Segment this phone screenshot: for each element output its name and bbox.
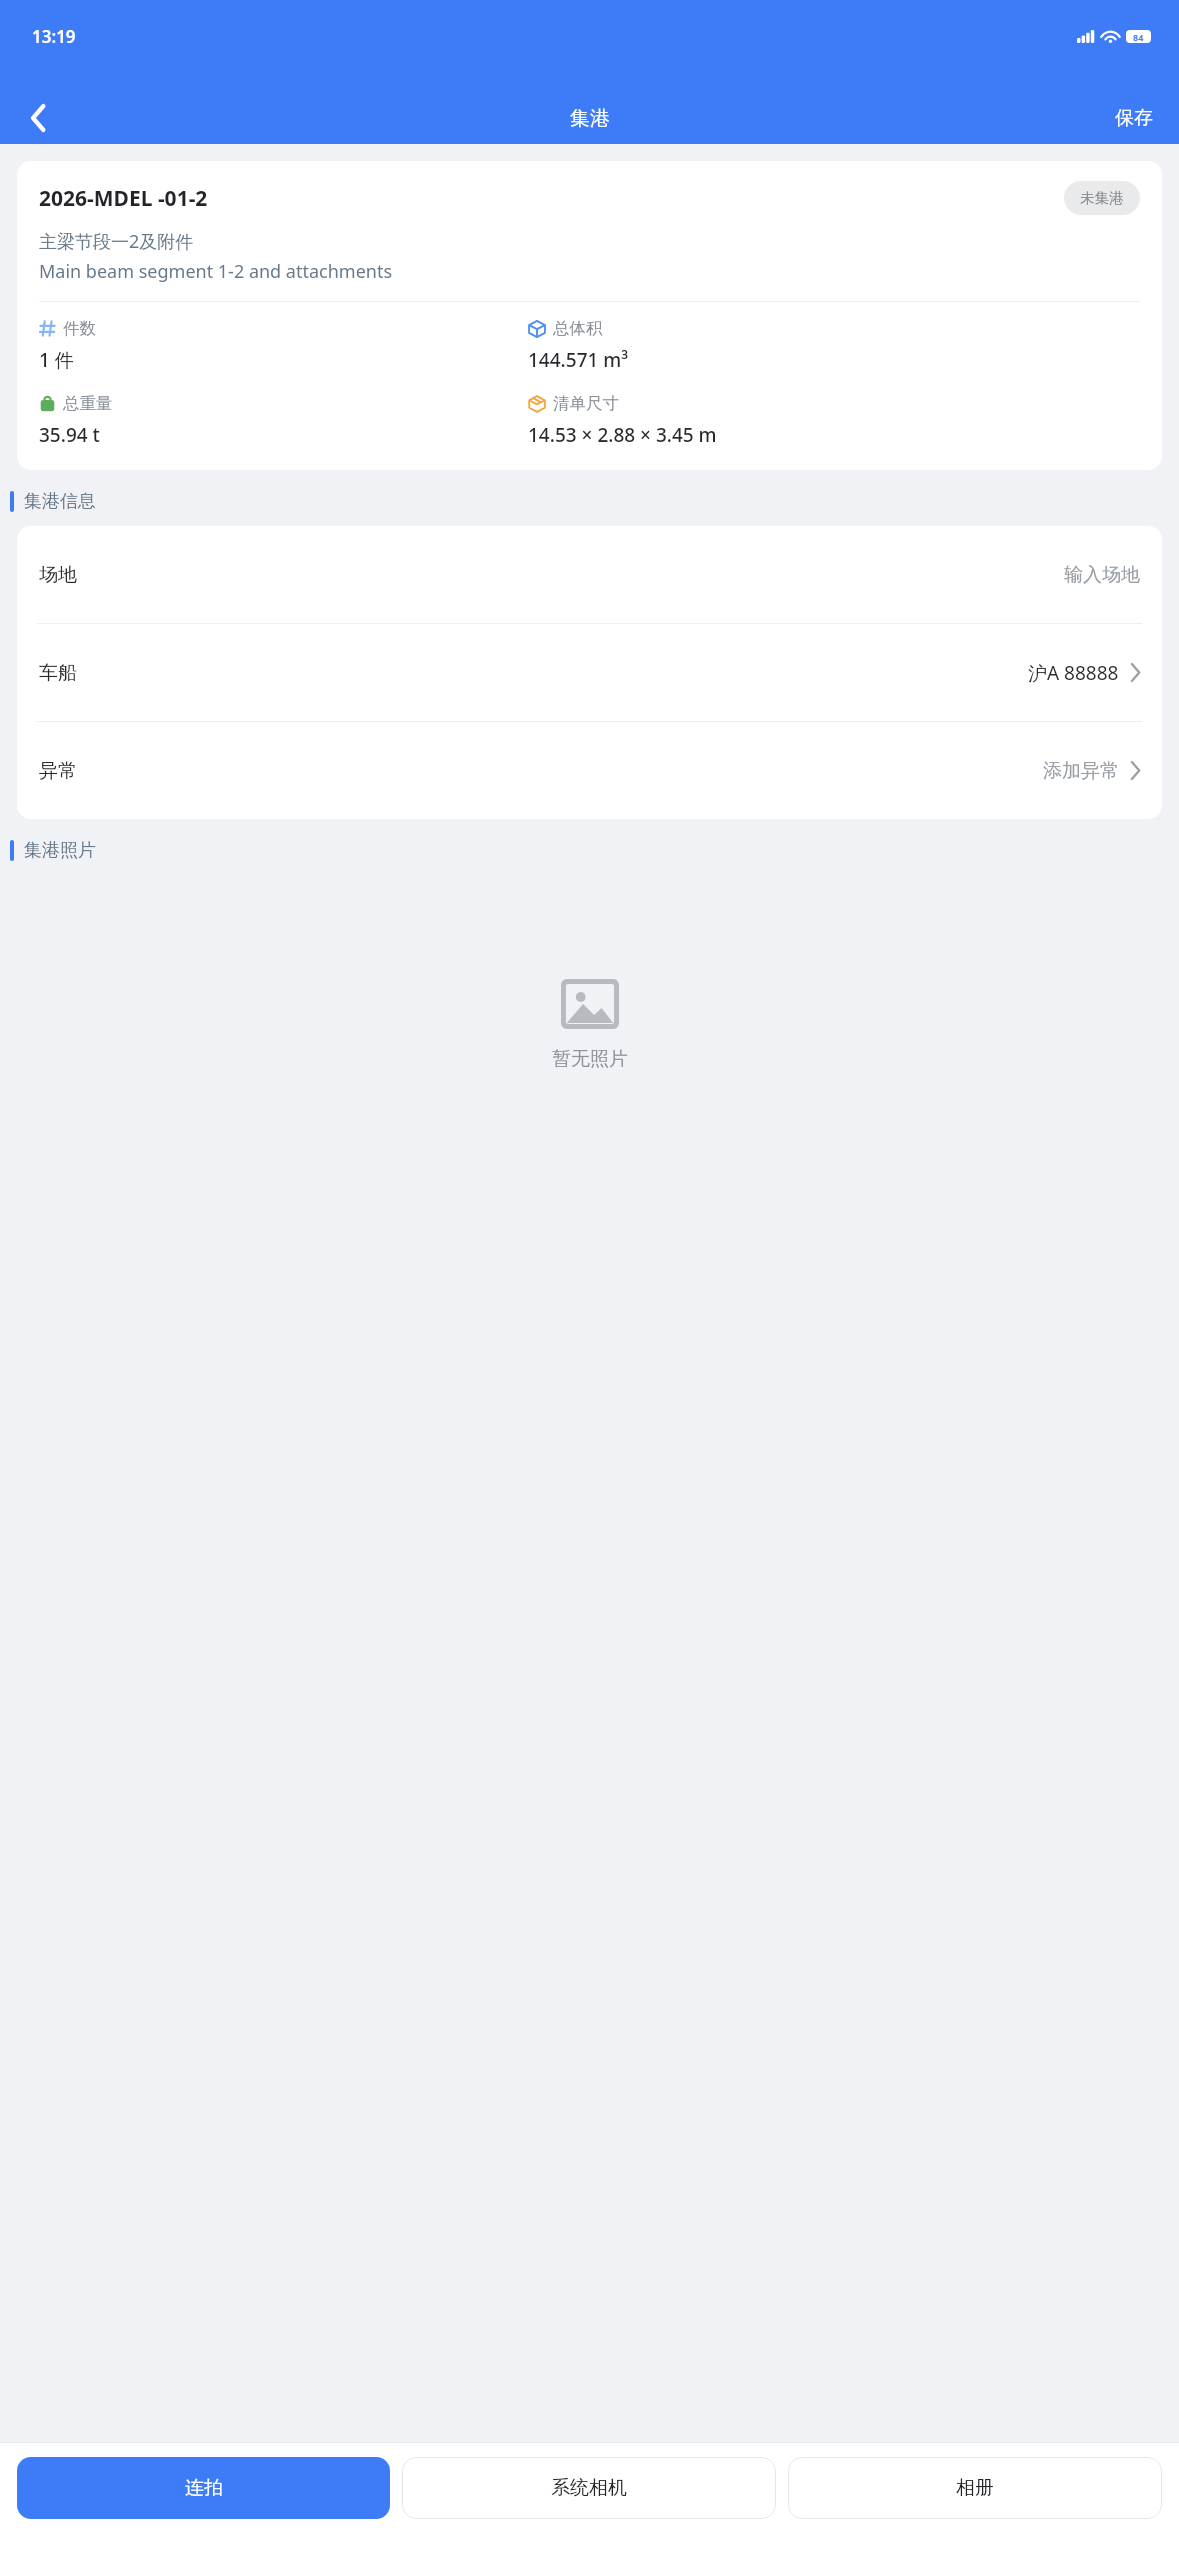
staticText: 13:19: [32, 25, 76, 48]
staticText: 沪A 88888: [1028, 660, 1119, 686]
staticText: 车船: [39, 661, 1028, 685]
staticText: 集港信息: [24, 490, 96, 513]
staticText: 暂无照片: [552, 1047, 628, 1071]
staticText: Main beam segment 1-2 and attachments: [39, 259, 393, 284]
staticText: 保存: [1115, 106, 1153, 130]
staticText: 2026-MDEL -01-2: [39, 184, 1064, 213]
button[interactable]: 2026-MDEL -01-2: [17, 161, 1162, 470]
button[interactable]: 系统相机: [402, 2457, 776, 2519]
staticText: 清单尺寸: [553, 393, 619, 414]
staticText: 异常: [39, 759, 1043, 783]
staticText: 件数: [63, 318, 96, 339]
staticText: 总重量: [63, 393, 113, 414]
staticText: 84: [1133, 31, 1144, 43]
button[interactable]: 场地: [17, 526, 1162, 623]
staticText: 35.94 t: [39, 422, 100, 448]
staticText: 集港: [570, 106, 610, 131]
button[interactable]: 异常: [17, 722, 1162, 819]
staticText: 未集港: [1080, 189, 1124, 207]
staticText: 场地: [39, 563, 1064, 587]
staticText: 总体积: [553, 318, 603, 339]
button[interactable]: 相册: [788, 2457, 1162, 2519]
button[interactable]: 车船: [17, 624, 1162, 721]
staticText: 系统相机: [551, 2476, 627, 2500]
staticText: 连拍: [185, 2476, 223, 2500]
staticText: 集港照片: [24, 839, 96, 862]
button[interactable]: 连拍: [17, 2457, 390, 2519]
staticText: 14.53 × 2.88 × 3.45 m: [528, 422, 717, 448]
staticText: 添加异常: [1043, 759, 1119, 783]
button[interactable]: 返回: [14, 94, 62, 142]
button[interactable]: 保存: [1105, 100, 1163, 136]
staticText: 相册: [956, 2476, 994, 2500]
staticText: 1 件: [39, 347, 74, 373]
staticText: 主梁节段一2及附件: [39, 229, 194, 254]
staticText: 输入场地: [1064, 563, 1140, 587]
staticText: 144.571 m³: [528, 347, 629, 373]
